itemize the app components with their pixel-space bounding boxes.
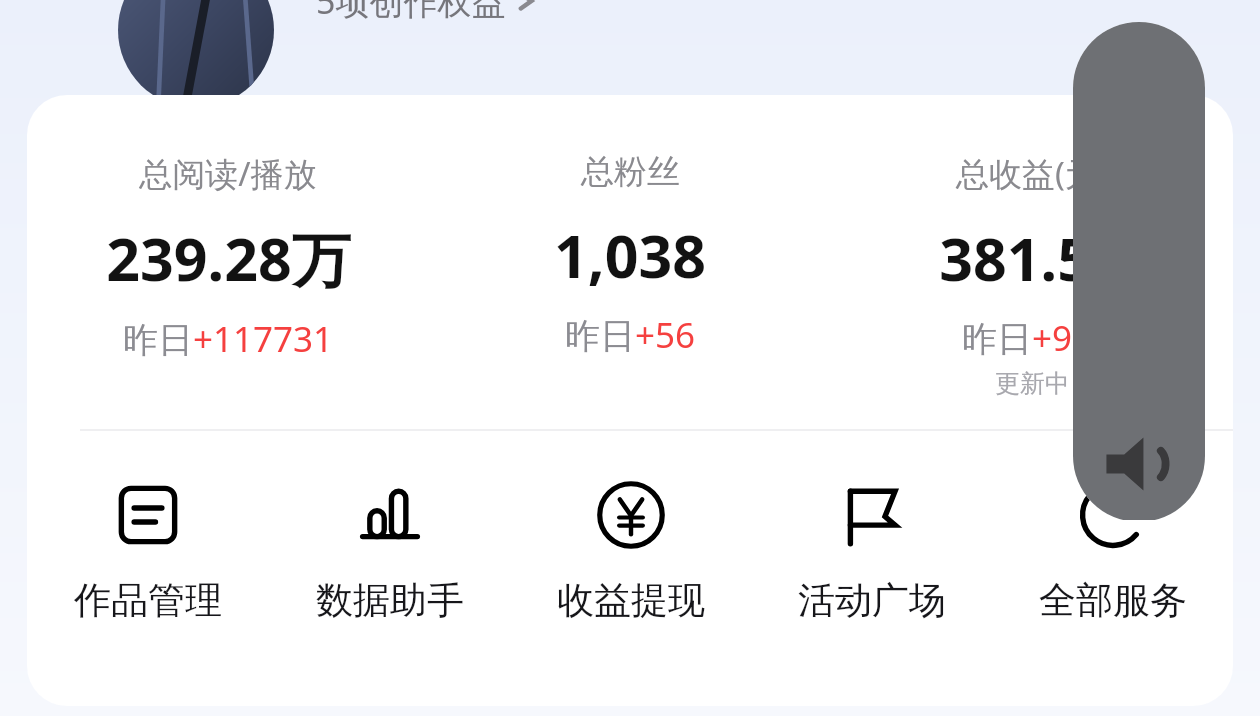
other: Volume: [1073, 22, 1205, 522]
staticText: 昨日+56: [565, 311, 696, 359]
button[interactable]: 数据助手: [269, 479, 510, 624]
staticText: 总粉丝: [581, 151, 680, 193]
button[interactable]: 作品管理: [27, 479, 269, 624]
staticText: 总阅读/播放: [139, 151, 317, 196]
staticText: 作品管理: [74, 577, 222, 624]
staticText: 活动广场: [798, 577, 946, 624]
staticText: 总收益(元): [956, 151, 1108, 196]
button[interactable]: 活动广场: [751, 479, 992, 624]
button[interactable]: 总收益(元): [831, 151, 1233, 399]
staticText: 5项创作权益: [316, 0, 506, 24]
staticText: 收益提现: [557, 577, 705, 624]
button[interactable]: 总阅读/播放: [27, 151, 429, 363]
button[interactable]: [118, 0, 274, 108]
staticText: 239.28万: [106, 218, 351, 299]
staticText: 1,038: [554, 215, 706, 295]
button[interactable]: 5项创作权益: [316, 0, 538, 24]
staticText: 381.58: [939, 218, 1125, 298]
button[interactable]: 总粉丝: [429, 151, 831, 359]
staticText: 昨日+117731: [123, 315, 334, 363]
staticText: 更新中: [995, 368, 1070, 399]
button[interactable]: 全部服务: [992, 479, 1233, 624]
staticText: 全部服务: [1039, 577, 1187, 624]
button[interactable]: 收益提现: [510, 479, 751, 624]
staticText: 昨日+9.3: [962, 314, 1102, 362]
staticText: 数据助手: [316, 577, 464, 624]
